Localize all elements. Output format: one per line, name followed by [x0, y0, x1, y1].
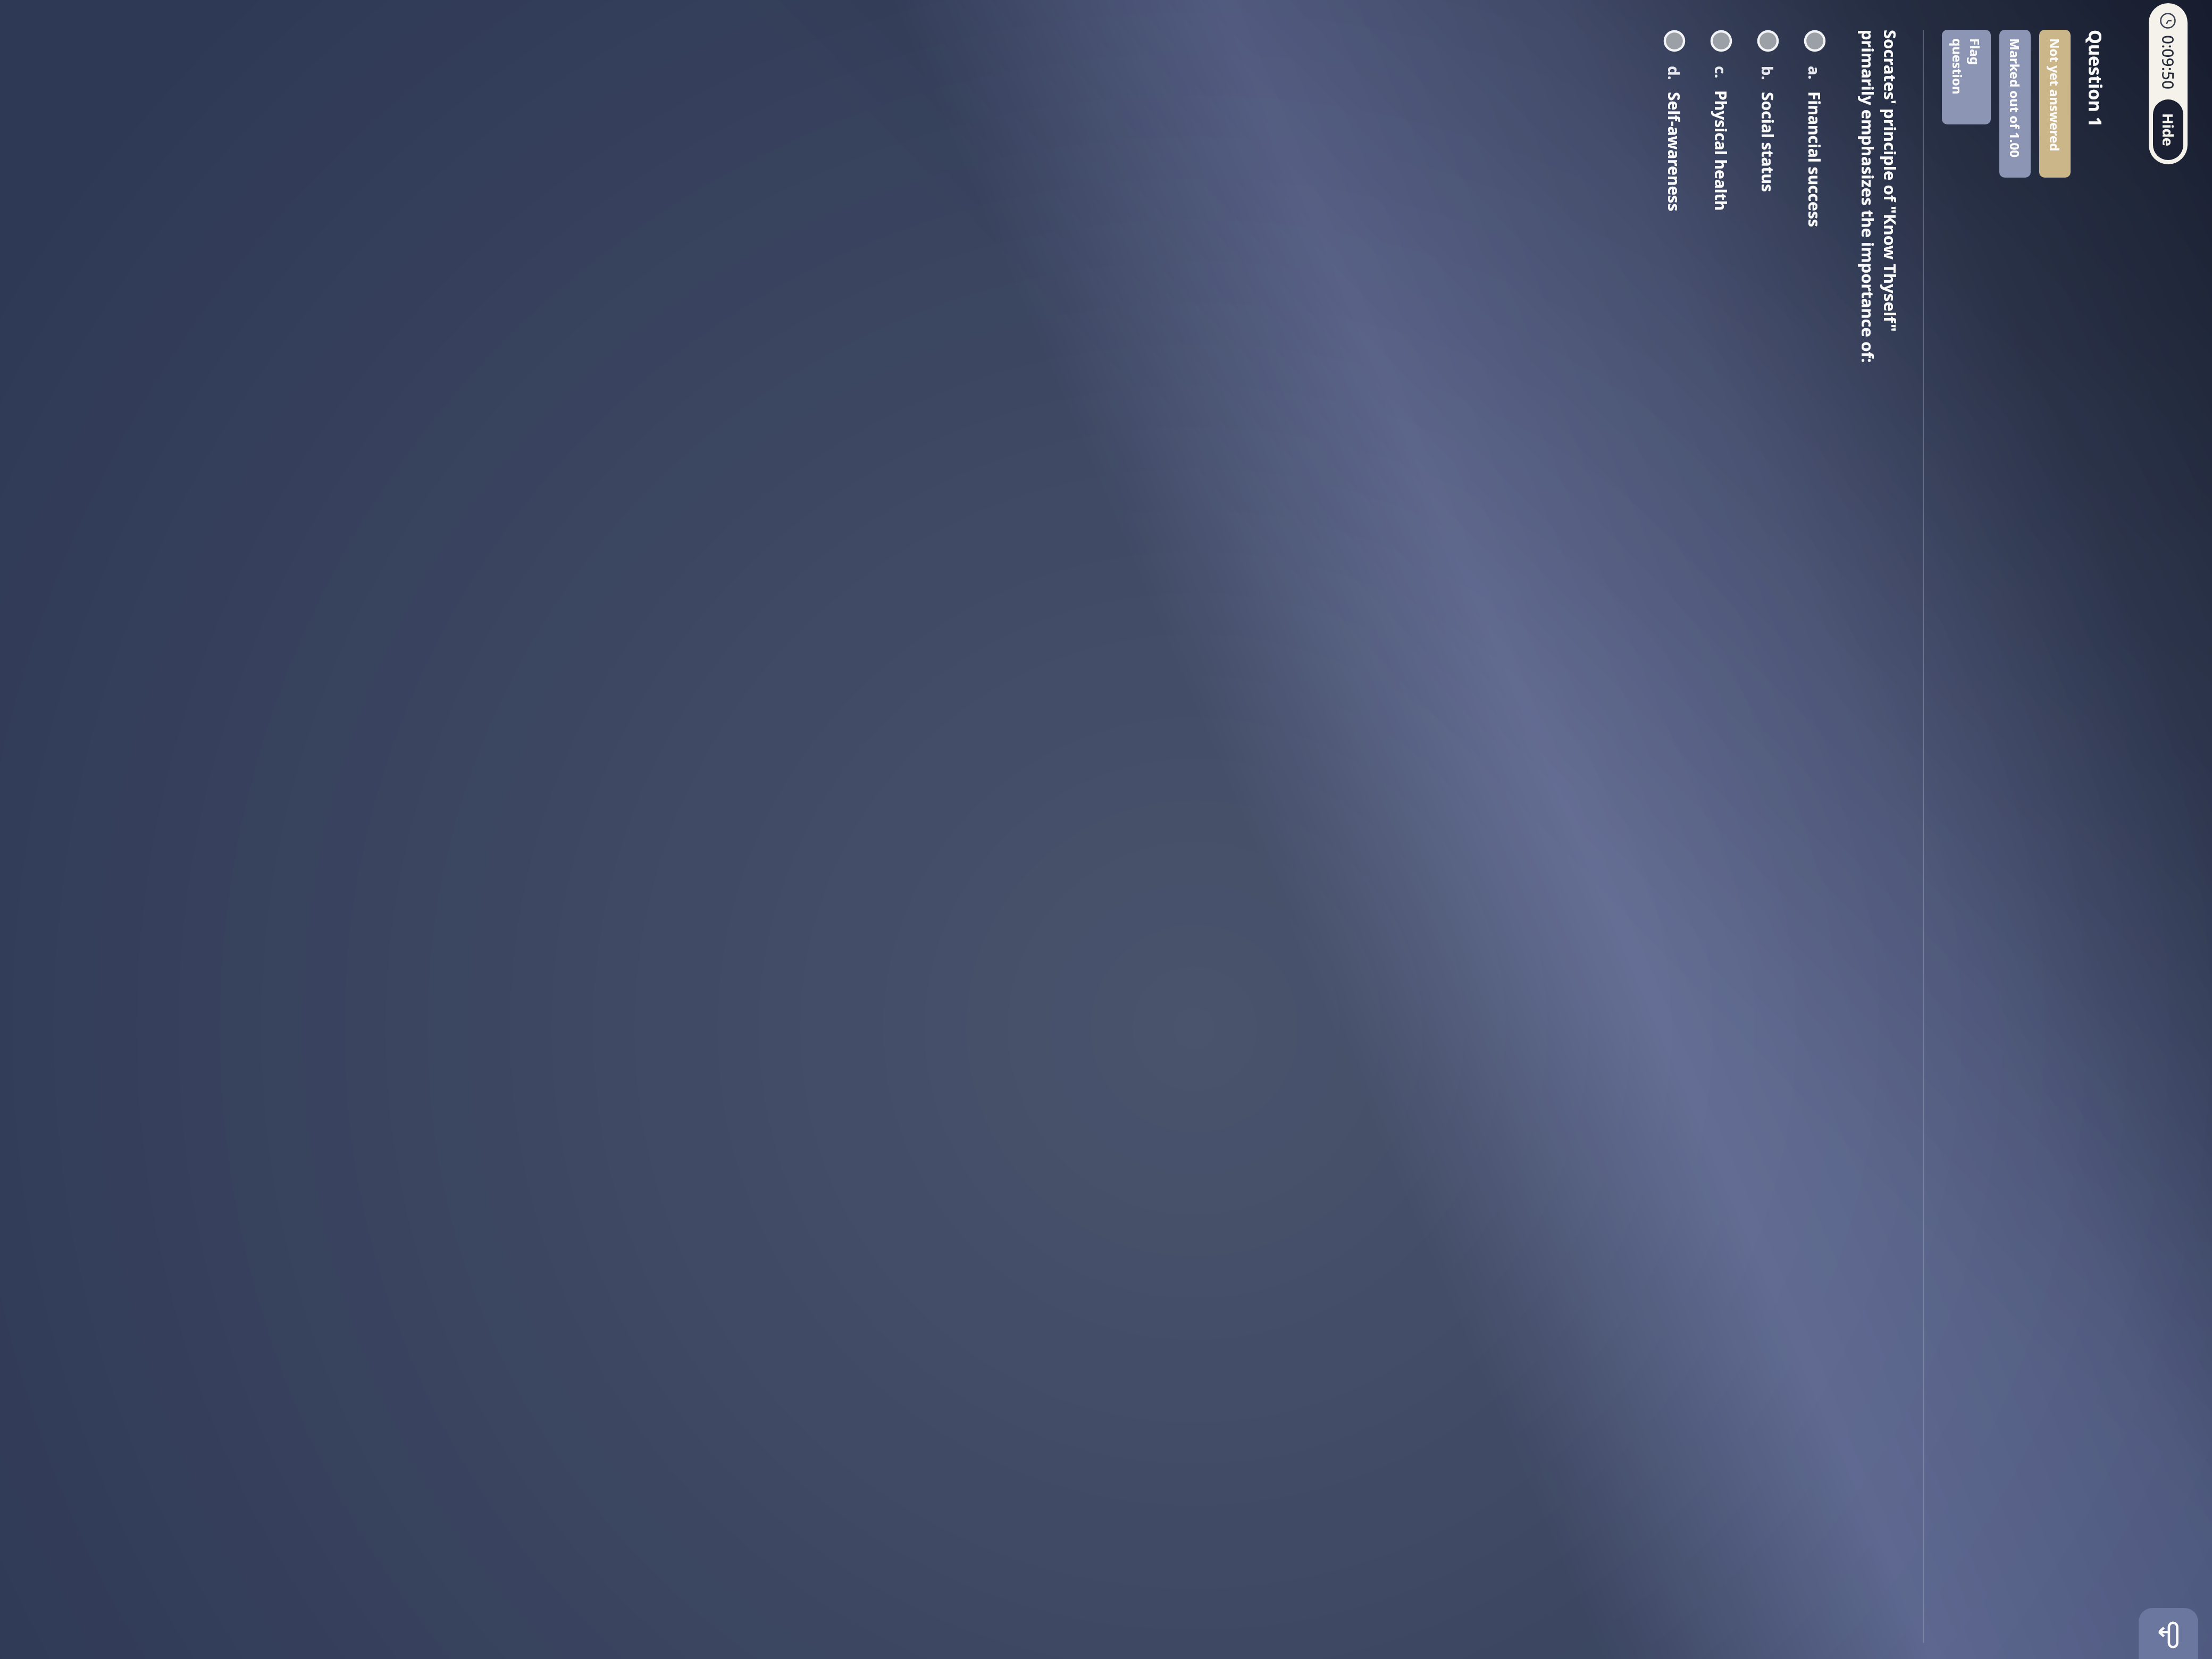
button[interactable]: Jump to bottom: [2139, 1608, 2198, 1659]
button[interactable]: a.: [1804, 30, 1826, 1641]
button[interactable]: Marked out of 1.00: [1999, 30, 2031, 178]
button[interactable]: Not yet answered: [2039, 30, 2071, 178]
button[interactable]: d.: [1663, 30, 1686, 1641]
staticText: Not yet answered: [2046, 38, 2064, 152]
staticText: Flag question: [1949, 38, 1984, 116]
button[interactable]: Hide: [2153, 99, 2183, 160]
staticText: Socrates' principle of "Know Thyself" pr…: [1857, 30, 1901, 363]
staticText: Physical health: [1710, 90, 1732, 211]
staticText: Question 1: [2083, 30, 2108, 127]
staticText: Marked out of 1.00: [2006, 38, 2024, 158]
staticText: b.: [1757, 66, 1778, 80]
staticText: c.: [1711, 66, 1731, 79]
staticText: Social status: [1757, 92, 1779, 192]
button[interactable]: c.: [1710, 30, 1732, 1641]
button[interactable]: 0:09:50: [2149, 3, 2188, 164]
button[interactable]: Flag question: [1942, 30, 1991, 124]
staticText: Self-awareness: [1663, 92, 1685, 212]
staticText: Financial success: [1804, 91, 1825, 228]
staticText: d.: [1664, 66, 1685, 80]
staticText: 0:09:50: [2157, 35, 2179, 90]
staticText: Hide: [2158, 113, 2178, 146]
button[interactable]: b.: [1757, 30, 1779, 1641]
staticText: a.: [1804, 66, 1825, 80]
